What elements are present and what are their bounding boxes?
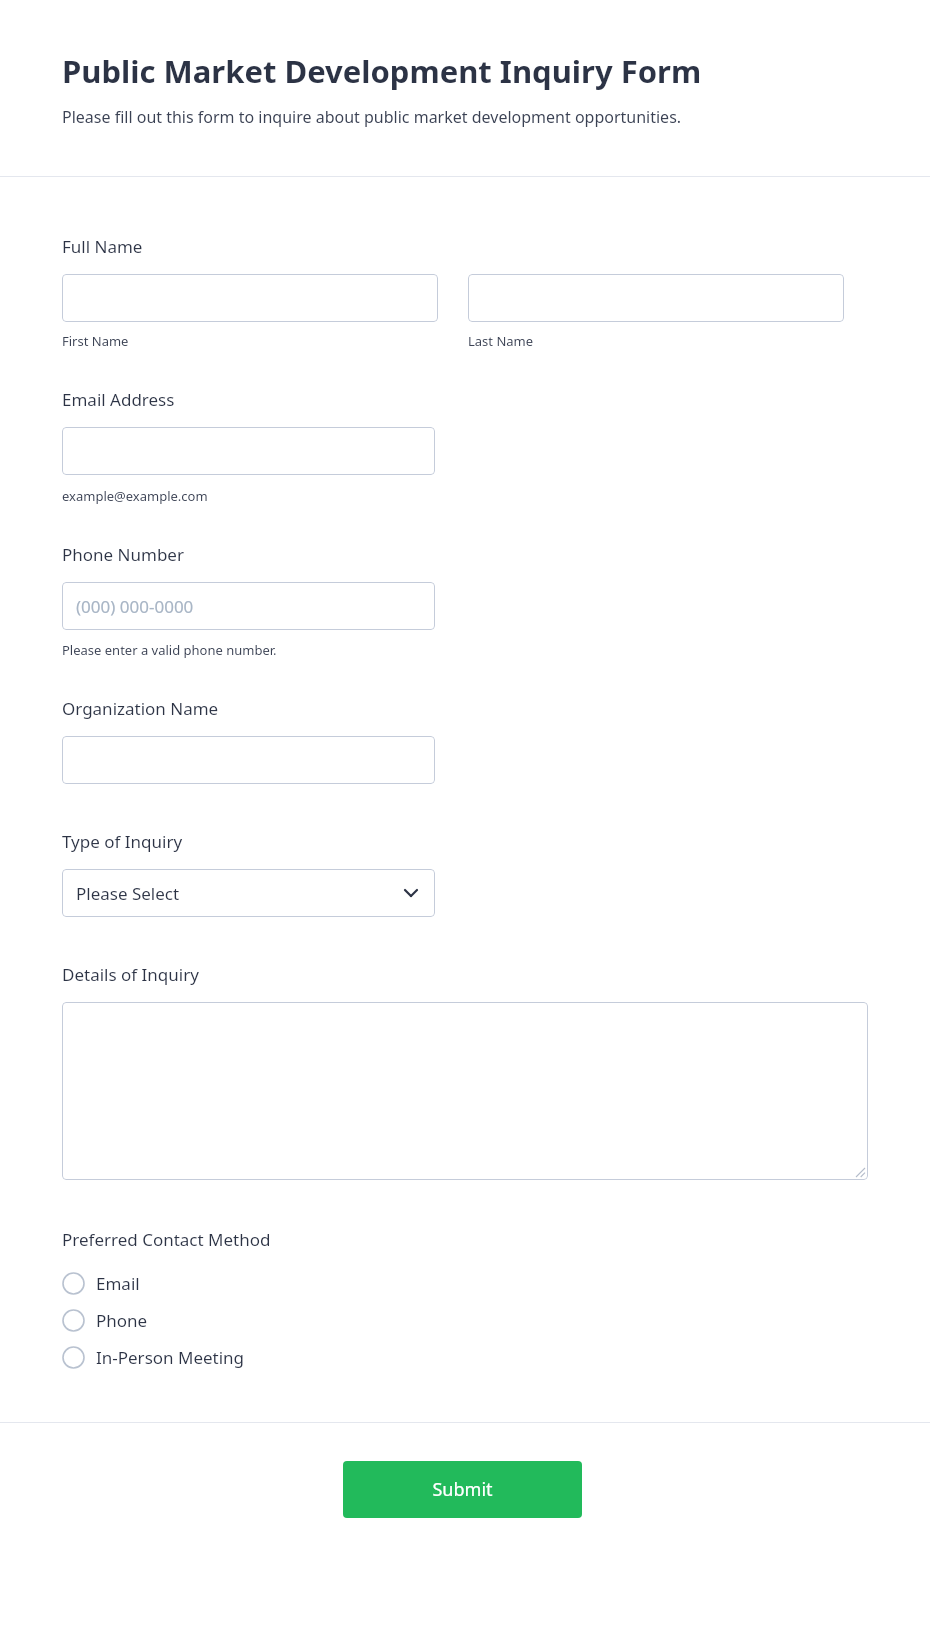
staticText: example@example.com (62, 487, 208, 505)
staticText: Preferred Contact Method (62, 1228, 271, 1251)
staticText: Phone (96, 1309, 148, 1332)
staticText: In-Person Meeting (96, 1346, 245, 1369)
staticText: (000) 000-0000 (76, 595, 194, 618)
staticText: Full Name (62, 235, 143, 258)
staticText: Please Select (76, 882, 180, 905)
staticText: Organization Name (62, 697, 219, 720)
button[interactable] (62, 274, 438, 322)
staticText: Please enter a valid phone number. (62, 641, 277, 659)
staticText: Details of Inquiry (62, 963, 199, 986)
button[interactable] (62, 736, 435, 784)
staticText: Email Address (62, 388, 175, 411)
button[interactable]: Email (0, 1265, 930, 1302)
staticText: Email (96, 1272, 140, 1295)
other: Open dropdown (401, 883, 421, 903)
staticText: Public Market Development Inquiry Form (62, 50, 702, 92)
button[interactable] (62, 1002, 868, 1180)
staticText: Phone Number (62, 543, 184, 566)
button[interactable] (62, 427, 435, 475)
button[interactable]: Please Select (62, 869, 435, 917)
staticText: First Name (62, 332, 129, 350)
button[interactable]: In-Person Meeting (0, 1339, 930, 1376)
staticText: Last Name (468, 332, 534, 350)
staticText: Please fill out this form to inquire abo… (62, 106, 682, 128)
button[interactable]: Phone (0, 1302, 930, 1339)
staticText: Type of Inquiry (62, 830, 183, 853)
button[interactable] (468, 274, 844, 322)
staticText: Submit (432, 1477, 493, 1502)
button[interactable]: Submit (343, 1461, 582, 1518)
button[interactable]: (000) 000-0000 (62, 582, 435, 630)
